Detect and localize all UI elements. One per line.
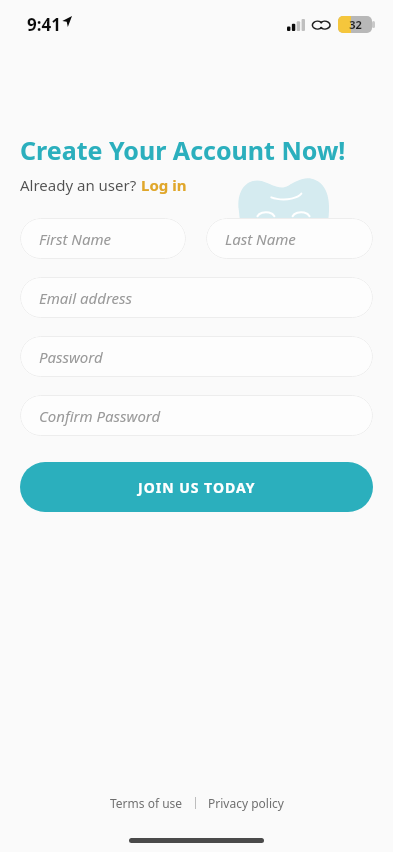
staticText: Confirm Password bbox=[39, 406, 161, 426]
staticText: Privacy policy bbox=[208, 795, 284, 811]
staticText: 9:41 bbox=[27, 13, 61, 36]
staticText: Password bbox=[39, 347, 103, 367]
staticText: 32 bbox=[349, 17, 362, 32]
staticText: Log in bbox=[141, 175, 187, 195]
button[interactable]: Password bbox=[20, 336, 373, 377]
button[interactable]: First Name bbox=[20, 218, 186, 259]
button[interactable]: Last Name bbox=[206, 218, 373, 259]
button[interactable]: Confirm Password bbox=[20, 395, 373, 436]
staticText: JOIN US TODAY bbox=[138, 478, 256, 497]
staticText: Terms of use bbox=[110, 795, 183, 811]
staticText: First Name bbox=[39, 229, 112, 249]
staticText: Last Name bbox=[225, 229, 296, 249]
staticText: Create Your Account Now! bbox=[20, 133, 346, 167]
button[interactable]: JOIN US TODAY bbox=[20, 462, 373, 512]
button[interactable]: Log in bbox=[141, 175, 187, 195]
button[interactable]: Privacy policy bbox=[208, 795, 284, 811]
staticText: Email address bbox=[39, 288, 133, 308]
button[interactable]: Terms of use bbox=[110, 795, 183, 811]
button[interactable]: Email address bbox=[20, 277, 373, 318]
staticText: Already an user? bbox=[20, 175, 141, 195]
